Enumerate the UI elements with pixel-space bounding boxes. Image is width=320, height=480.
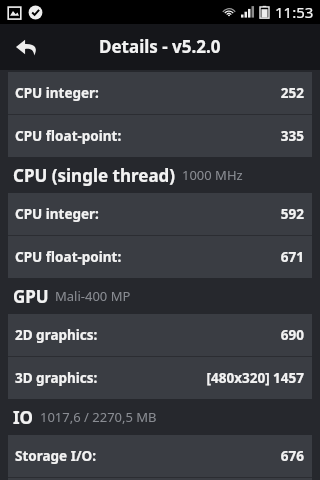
button[interactable]: CPU integer:	[8, 72, 312, 114]
staticText: 592	[280, 205, 304, 223]
staticText: 2D graphics:	[15, 326, 98, 344]
staticText: CPU integer:	[15, 205, 99, 223]
staticText: 11:53	[275, 2, 314, 22]
staticText: 1000 MHz	[182, 166, 243, 184]
button[interactable]: Back	[6, 26, 48, 68]
staticText: 335	[280, 127, 304, 145]
button[interactable]: CPU integer:	[8, 193, 312, 235]
staticText: CPU integer:	[15, 84, 99, 102]
staticText: 676	[280, 447, 304, 465]
staticText: 3D graphics:	[15, 369, 98, 387]
staticText: [480x320] 1457	[206, 369, 304, 387]
staticText: 690	[280, 326, 304, 344]
staticText: CPU (single thread)	[13, 164, 176, 187]
staticText: Storage I/O:	[15, 447, 97, 465]
staticText: 671	[280, 248, 304, 266]
staticText: CPU float-point:	[15, 248, 122, 266]
staticText: IO	[13, 406, 34, 429]
staticText: Mali-400 MP	[55, 287, 131, 305]
button[interactable]: 2D graphics:	[8, 314, 312, 356]
staticText: GPU	[13, 285, 49, 308]
button[interactable]: 3D graphics:	[8, 357, 312, 399]
staticText: CPU float-point:	[15, 127, 122, 145]
button[interactable]: Storage I/O:	[8, 435, 312, 477]
staticText: 252	[280, 84, 304, 102]
button[interactable]: CPU float-point:	[8, 115, 312, 157]
button[interactable]: CPU float-point:	[8, 236, 312, 278]
staticText: Details - v5.2.0	[99, 35, 221, 58]
staticText: 1017,6 / 2270,5 MB	[40, 408, 157, 426]
